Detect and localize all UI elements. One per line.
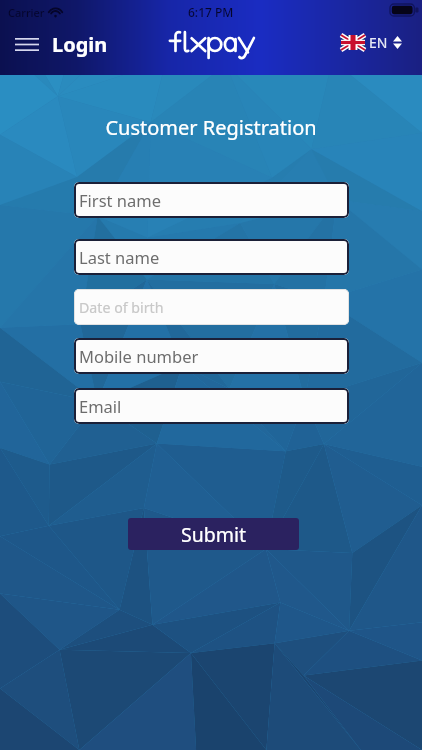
button[interactable]: Last name xyxy=(74,239,349,275)
button[interactable]: Mobile number xyxy=(74,338,349,374)
button[interactable]: Date of birth xyxy=(74,289,349,325)
staticText: Last name xyxy=(79,246,160,268)
button[interactable]: Open navigation menu xyxy=(9,26,45,62)
button[interactable]: Email xyxy=(74,388,349,424)
staticText: Submit xyxy=(181,521,247,548)
button[interactable]: Login xyxy=(50,31,110,58)
staticText: Email xyxy=(79,395,122,417)
staticText: Carrier xyxy=(8,5,45,20)
staticText: 6:17 PM xyxy=(188,4,234,20)
staticText: Customer Registration xyxy=(105,114,317,141)
button[interactable]: First name xyxy=(74,182,349,218)
staticText: Date of birth xyxy=(79,298,164,317)
button[interactable]: Select language English xyxy=(341,33,402,52)
button[interactable]: Submit xyxy=(128,518,299,550)
staticText: Login xyxy=(52,31,108,58)
staticText: First name xyxy=(79,189,161,211)
staticText: Mobile number xyxy=(79,345,199,367)
staticText: EN xyxy=(369,33,388,52)
